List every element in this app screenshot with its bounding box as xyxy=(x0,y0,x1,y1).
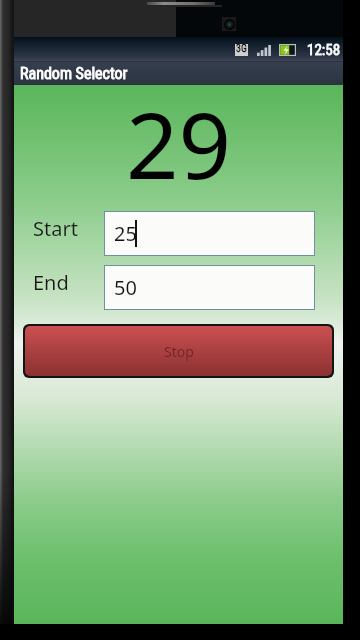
staticText: 25 xyxy=(114,220,137,247)
staticText: Random Selector xyxy=(20,64,128,83)
staticText: 12:58 xyxy=(307,41,341,59)
staticText: 29 xyxy=(126,81,232,206)
staticText: Stop xyxy=(164,342,194,361)
button[interactable]: 50 xyxy=(105,266,314,309)
button[interactable]: 25 xyxy=(105,212,314,255)
staticText: End xyxy=(33,269,69,296)
staticText: Start xyxy=(33,215,78,242)
staticText: 50 xyxy=(114,274,137,301)
button[interactable]: Stop xyxy=(25,326,332,376)
staticText: 3G xyxy=(236,43,247,55)
